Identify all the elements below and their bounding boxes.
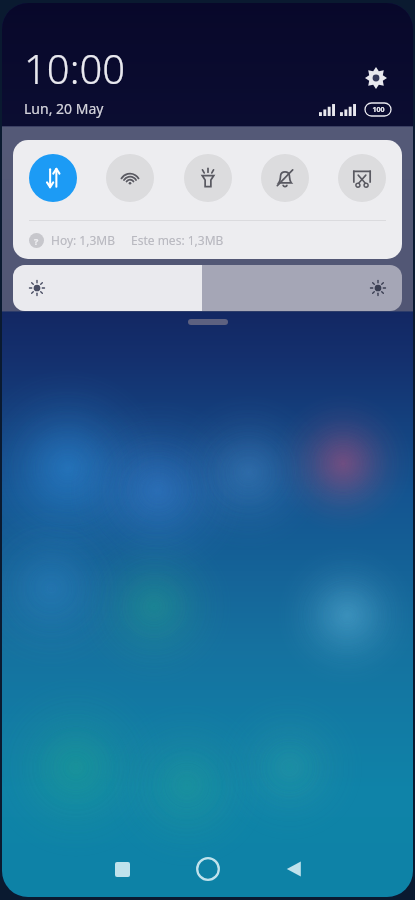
- button[interactable]: Settings: [361, 63, 391, 93]
- button[interactable]: Brightness: [13, 265, 402, 311]
- staticText: Este mes: 1,3MB: [131, 232, 224, 248]
- staticText: 100: [372, 105, 385, 115]
- staticText: Lun, 20 May: [24, 99, 104, 118]
- button[interactable]: Flashlight: [184, 154, 232, 202]
- button[interactable]: Wi-Fi: [106, 154, 154, 202]
- button[interactable]: Expand shade: [188, 319, 228, 325]
- staticText: Hoy: 1,3MB: [51, 232, 115, 248]
- staticText: 10:00: [24, 41, 126, 95]
- button[interactable]: Back: [265, 841, 323, 897]
- button[interactable]: Mobile data: [29, 154, 77, 202]
- button[interactable]: ?: [13, 221, 402, 259]
- button[interactable]: Home: [179, 841, 237, 897]
- button[interactable]: Screenshot: [338, 154, 386, 202]
- staticText: ?: [34, 235, 39, 247]
- button[interactable]: Recents: [93, 841, 151, 897]
- button[interactable]: Silent mode: [261, 154, 309, 202]
